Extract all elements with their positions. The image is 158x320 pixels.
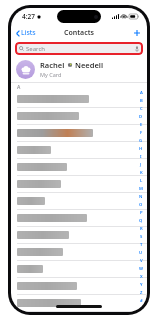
other: Dictate bbox=[135, 46, 139, 52]
staticText: C bbox=[140, 106, 143, 112]
staticText: S bbox=[140, 234, 143, 240]
staticText: Needell bbox=[75, 60, 104, 70]
staticText: Q bbox=[139, 218, 143, 224]
staticText: Z bbox=[140, 290, 143, 296]
button[interactable] bbox=[11, 295, 147, 312]
button[interactable]: Alphabet index bbox=[138, 89, 144, 305]
staticText: G bbox=[139, 138, 143, 144]
staticText: A bbox=[140, 90, 143, 96]
button[interactable] bbox=[11, 193, 147, 210]
staticText: B bbox=[140, 98, 143, 104]
button[interactable]: Search bbox=[16, 43, 142, 54]
staticText: My Card bbox=[40, 71, 62, 78]
staticText: L bbox=[140, 178, 143, 184]
button[interactable] bbox=[11, 261, 147, 278]
staticText: M bbox=[139, 186, 143, 192]
staticText: V bbox=[140, 258, 143, 264]
button[interactable] bbox=[11, 210, 147, 227]
staticText: N bbox=[139, 194, 143, 200]
button[interactable] bbox=[11, 125, 147, 142]
staticText: E bbox=[140, 122, 143, 128]
button[interactable]: Lists bbox=[11, 26, 40, 40]
staticText: Lists bbox=[21, 28, 36, 38]
staticText: 4:27 bbox=[22, 12, 35, 21]
staticText: Contacts bbox=[64, 28, 94, 38]
staticText: K bbox=[140, 170, 143, 176]
staticText: # bbox=[140, 298, 143, 304]
button[interactable] bbox=[11, 159, 147, 176]
staticText: Search bbox=[26, 45, 45, 53]
button[interactable]: Rachel bbox=[11, 56, 147, 82]
staticText: T bbox=[140, 242, 143, 248]
staticText: R bbox=[140, 226, 143, 232]
button[interactable] bbox=[11, 91, 147, 108]
button[interactable] bbox=[11, 278, 147, 295]
staticText: P bbox=[140, 210, 143, 216]
staticText: H bbox=[139, 146, 143, 152]
staticText: A bbox=[17, 84, 21, 91]
staticText: Rachel bbox=[40, 60, 65, 70]
button[interactable] bbox=[11, 227, 147, 244]
staticText: O bbox=[139, 202, 143, 208]
staticText: I bbox=[140, 154, 142, 160]
staticText: F bbox=[140, 130, 143, 136]
button[interactable] bbox=[11, 142, 147, 159]
button[interactable] bbox=[11, 244, 147, 261]
staticText: D bbox=[139, 114, 143, 120]
staticText: U bbox=[139, 250, 143, 256]
staticText: J bbox=[140, 162, 142, 168]
button[interactable] bbox=[11, 108, 147, 125]
button[interactable] bbox=[11, 176, 147, 193]
staticText: W bbox=[139, 266, 143, 272]
button[interactable]: Add contact bbox=[127, 26, 147, 40]
staticText: X bbox=[140, 274, 143, 280]
staticText: Y bbox=[140, 282, 143, 288]
